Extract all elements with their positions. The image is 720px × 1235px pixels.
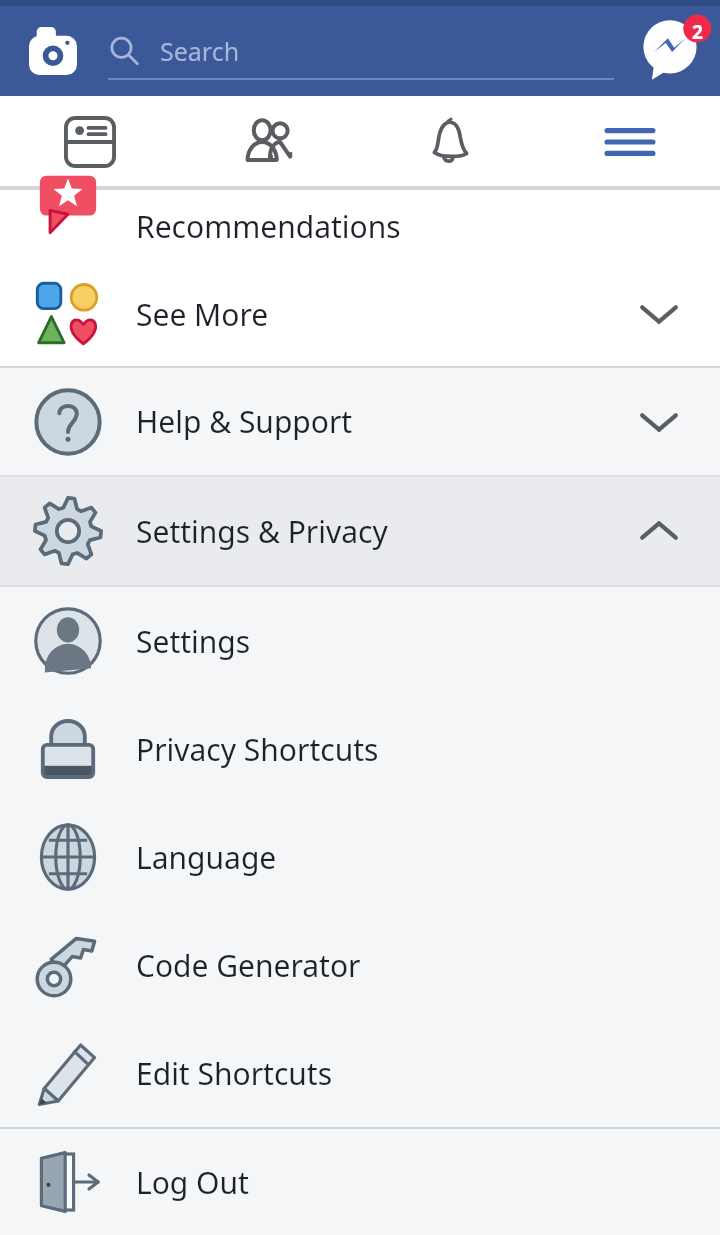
staticText: Settings & Privacy	[136, 511, 388, 552]
staticText: See More	[136, 294, 269, 335]
button[interactable]: Menu	[540, 96, 720, 188]
button[interactable]: News Feed	[0, 96, 180, 188]
button[interactable]: Friends	[180, 96, 360, 188]
button[interactable]: Settings	[0, 587, 720, 695]
button[interactable]: Camera	[22, 20, 84, 82]
staticText: Settings	[136, 621, 251, 662]
button[interactable]: Edit Shortcuts	[0, 1019, 720, 1127]
button[interactable]: Settings & Privacy	[0, 477, 720, 585]
button[interactable]: Language	[0, 803, 720, 911]
staticText: Language	[136, 837, 277, 878]
button[interactable]: Log Out	[0, 1129, 720, 1235]
button[interactable]: Privacy Shortcuts	[0, 695, 720, 803]
staticText: 2	[692, 19, 703, 45]
staticText: Privacy Shortcuts	[136, 729, 379, 770]
button[interactable]: Code Generator	[0, 911, 720, 1019]
staticText: Code Generator	[136, 945, 361, 986]
button[interactable]: Notifications	[360, 96, 540, 188]
button[interactable]: Messenger	[634, 8, 720, 94]
button[interactable]: Search	[108, 6, 614, 96]
button[interactable]: Recommendations	[0, 190, 720, 262]
button[interactable]: Help & Support	[0, 368, 720, 475]
staticText: Log Out	[136, 1162, 249, 1203]
staticText: Search	[160, 34, 240, 68]
staticText: Recommendations	[136, 206, 401, 247]
staticText: Edit Shortcuts	[136, 1053, 333, 1094]
staticText: Help & Support	[136, 401, 353, 442]
button[interactable]: See More	[0, 262, 720, 366]
